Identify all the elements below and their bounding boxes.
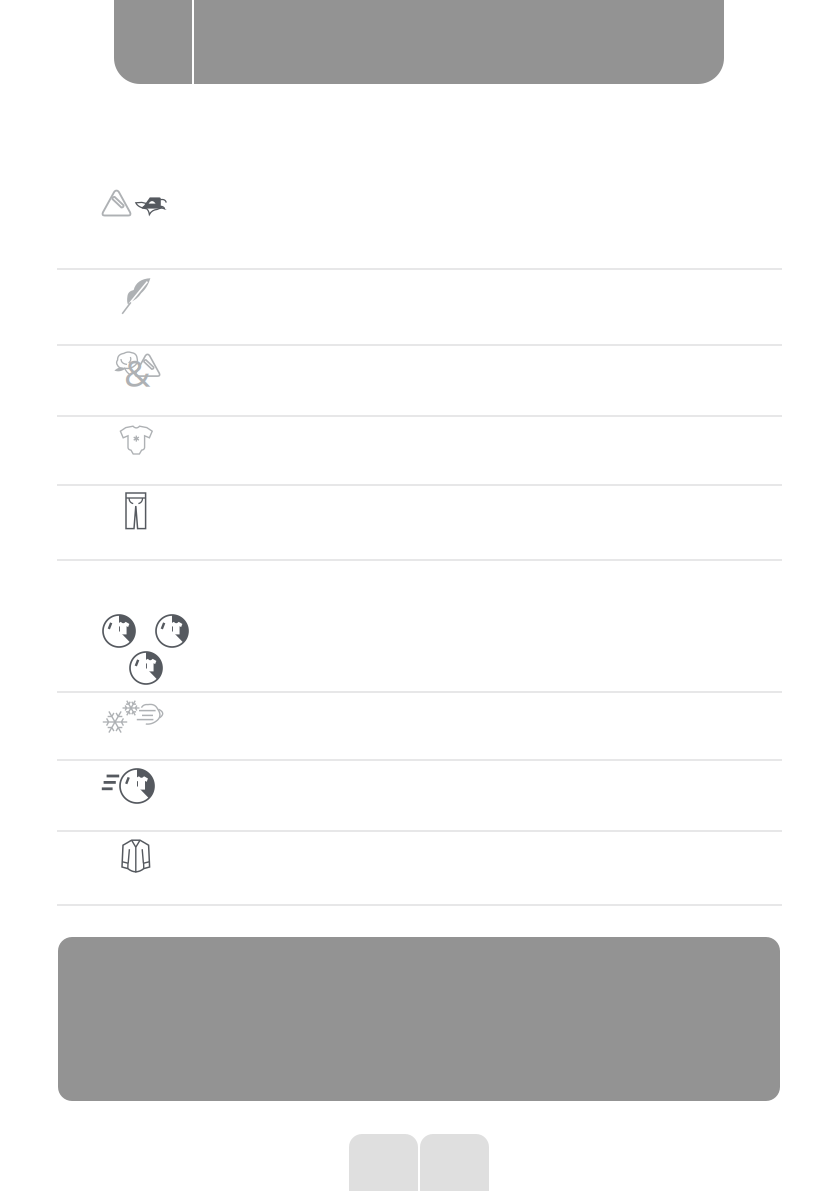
button[interactable]: Denim xyxy=(0,487,839,560)
button[interactable]: Dress shirts xyxy=(0,833,839,905)
button[interactable]: Cotton and ironing xyxy=(0,347,839,416)
staticText: & xyxy=(124,349,150,397)
button[interactable]: Do not iron xyxy=(0,170,839,269)
button[interactable]: Quick wash xyxy=(0,762,839,831)
button[interactable]: Delicates xyxy=(0,271,839,345)
button[interactable]: Wash cycle options xyxy=(0,594,839,692)
button[interactable]: Second segment xyxy=(420,1134,489,1191)
button[interactable]: First segment xyxy=(349,1134,418,1191)
button[interactable]: Cold air dry xyxy=(0,694,839,760)
button[interactable]: Baby clothes xyxy=(0,418,839,485)
